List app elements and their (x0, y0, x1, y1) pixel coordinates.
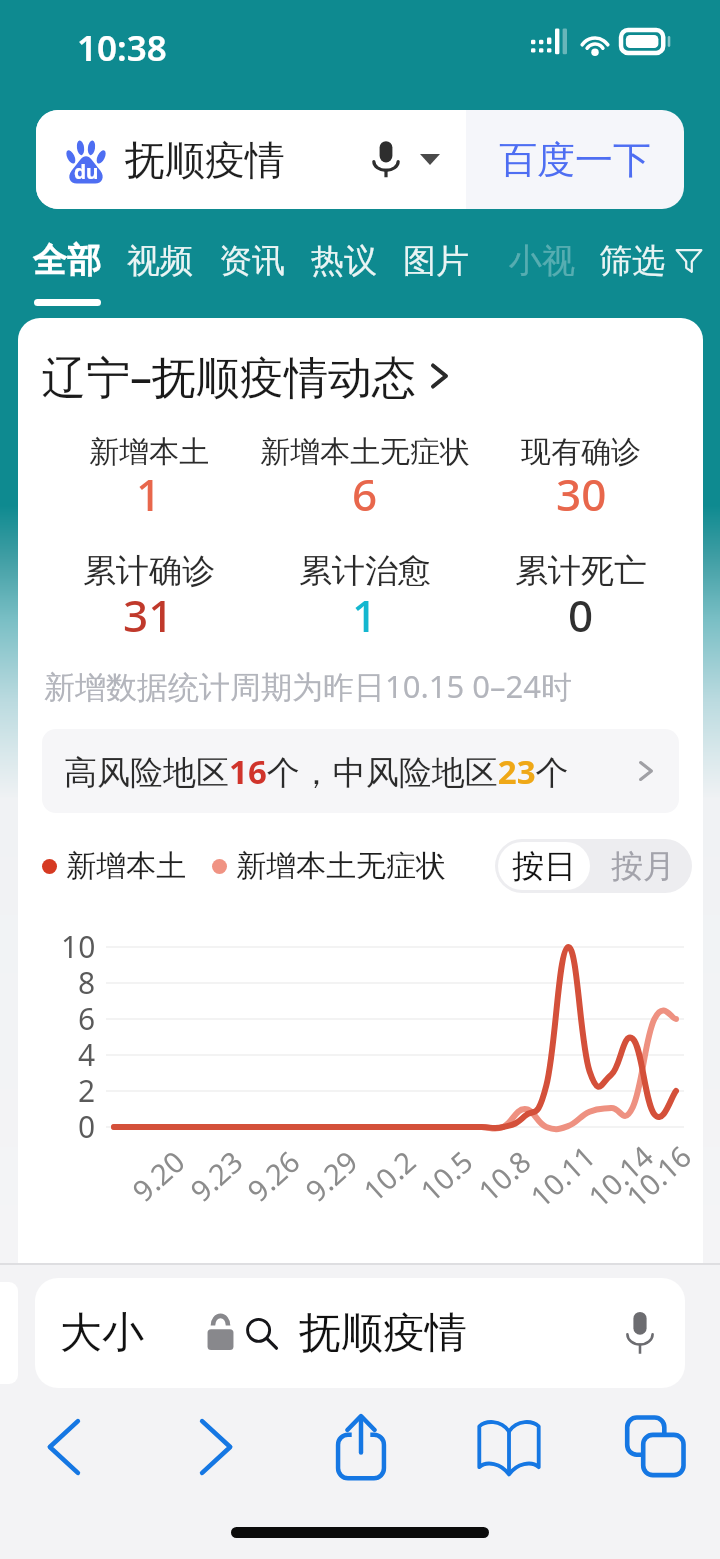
button[interactable]: 按日 (498, 842, 590, 890)
staticText: 累计死亡 (515, 550, 647, 592)
staticText: 新增本土 (89, 433, 209, 471)
staticText: 1 (136, 464, 162, 524)
button[interactable]: du (36, 110, 684, 209)
staticText: 2 (78, 1070, 96, 1111)
button[interactable]: 高风险地区16个，中风险地区23个 (42, 729, 679, 813)
staticText: 累计确诊 (83, 550, 215, 592)
button[interactable]: 辽宁–抚顺疫情动态 (42, 346, 703, 406)
staticText: 10.11 (522, 1136, 603, 1215)
staticText: 新增本土无症状 (260, 433, 470, 471)
staticText: 0 (568, 585, 594, 645)
staticText: 大小 (60, 1307, 144, 1360)
staticText: 新增数据统计周期为昨日10.15 0–24时 (44, 665, 572, 707)
staticText: 10.5 (411, 1142, 481, 1209)
button[interactable]: 全部 (33, 239, 101, 306)
staticText: 新增本土 (66, 847, 186, 885)
button[interactable]: Bookmarks (465, 1403, 553, 1491)
button[interactable]: 按月 (593, 839, 692, 893)
button[interactable]: 图片 (403, 239, 469, 281)
staticText: 9.29 (296, 1142, 366, 1209)
staticText: 按月 (611, 846, 675, 886)
staticText: 现有确诊 (521, 433, 641, 471)
staticText: 抚顺疫情 (125, 135, 285, 185)
button[interactable]: Forward (170, 1403, 258, 1491)
staticText: 全部 (33, 239, 101, 282)
staticText: 6 (352, 464, 378, 524)
staticText: du (74, 159, 99, 185)
staticText: 10 (61, 926, 96, 967)
staticText: 按日 (512, 846, 576, 886)
button[interactable]: 小视 (509, 239, 575, 281)
staticText: 1 (352, 585, 378, 645)
staticText: 8 (78, 962, 96, 1003)
staticText: 4 (78, 1034, 96, 1075)
staticText: 31 (123, 585, 174, 645)
staticText: 9.23 (181, 1142, 251, 1209)
staticText: 9.20 (123, 1142, 193, 1209)
staticText: 辽宁–抚顺疫情动态 (42, 346, 416, 406)
staticText: 百度一下 (499, 136, 651, 184)
button[interactable]: 筛选 (599, 239, 665, 281)
button[interactable]: Tabs (612, 1403, 700, 1491)
button[interactable]: 资讯 (219, 239, 285, 281)
staticText: 10.2 (354, 1142, 424, 1209)
staticText: 高风险地区16个，中风险地区23个 (64, 749, 569, 794)
staticText: 累计治愈 (299, 550, 431, 592)
staticText: 0 (78, 1106, 96, 1147)
staticText: 10.16 (618, 1136, 699, 1215)
staticText: 10.8 (469, 1142, 539, 1209)
button[interactable]: 大小 (35, 1278, 685, 1388)
button[interactable]: Back (22, 1403, 110, 1491)
staticText: 10:38 (77, 24, 167, 72)
button[interactable]: 视频 (127, 239, 193, 281)
staticText: 30 (556, 464, 607, 524)
staticText: 6 (78, 998, 96, 1039)
staticText: 10.14 (580, 1136, 661, 1215)
button[interactable]: Share (317, 1403, 405, 1491)
staticText: 抚顺疫情 (299, 1307, 467, 1360)
staticText: 新增本土无症状 (236, 847, 446, 885)
button[interactable]: 热议 (311, 239, 377, 281)
staticText: 9.26 (238, 1142, 308, 1209)
